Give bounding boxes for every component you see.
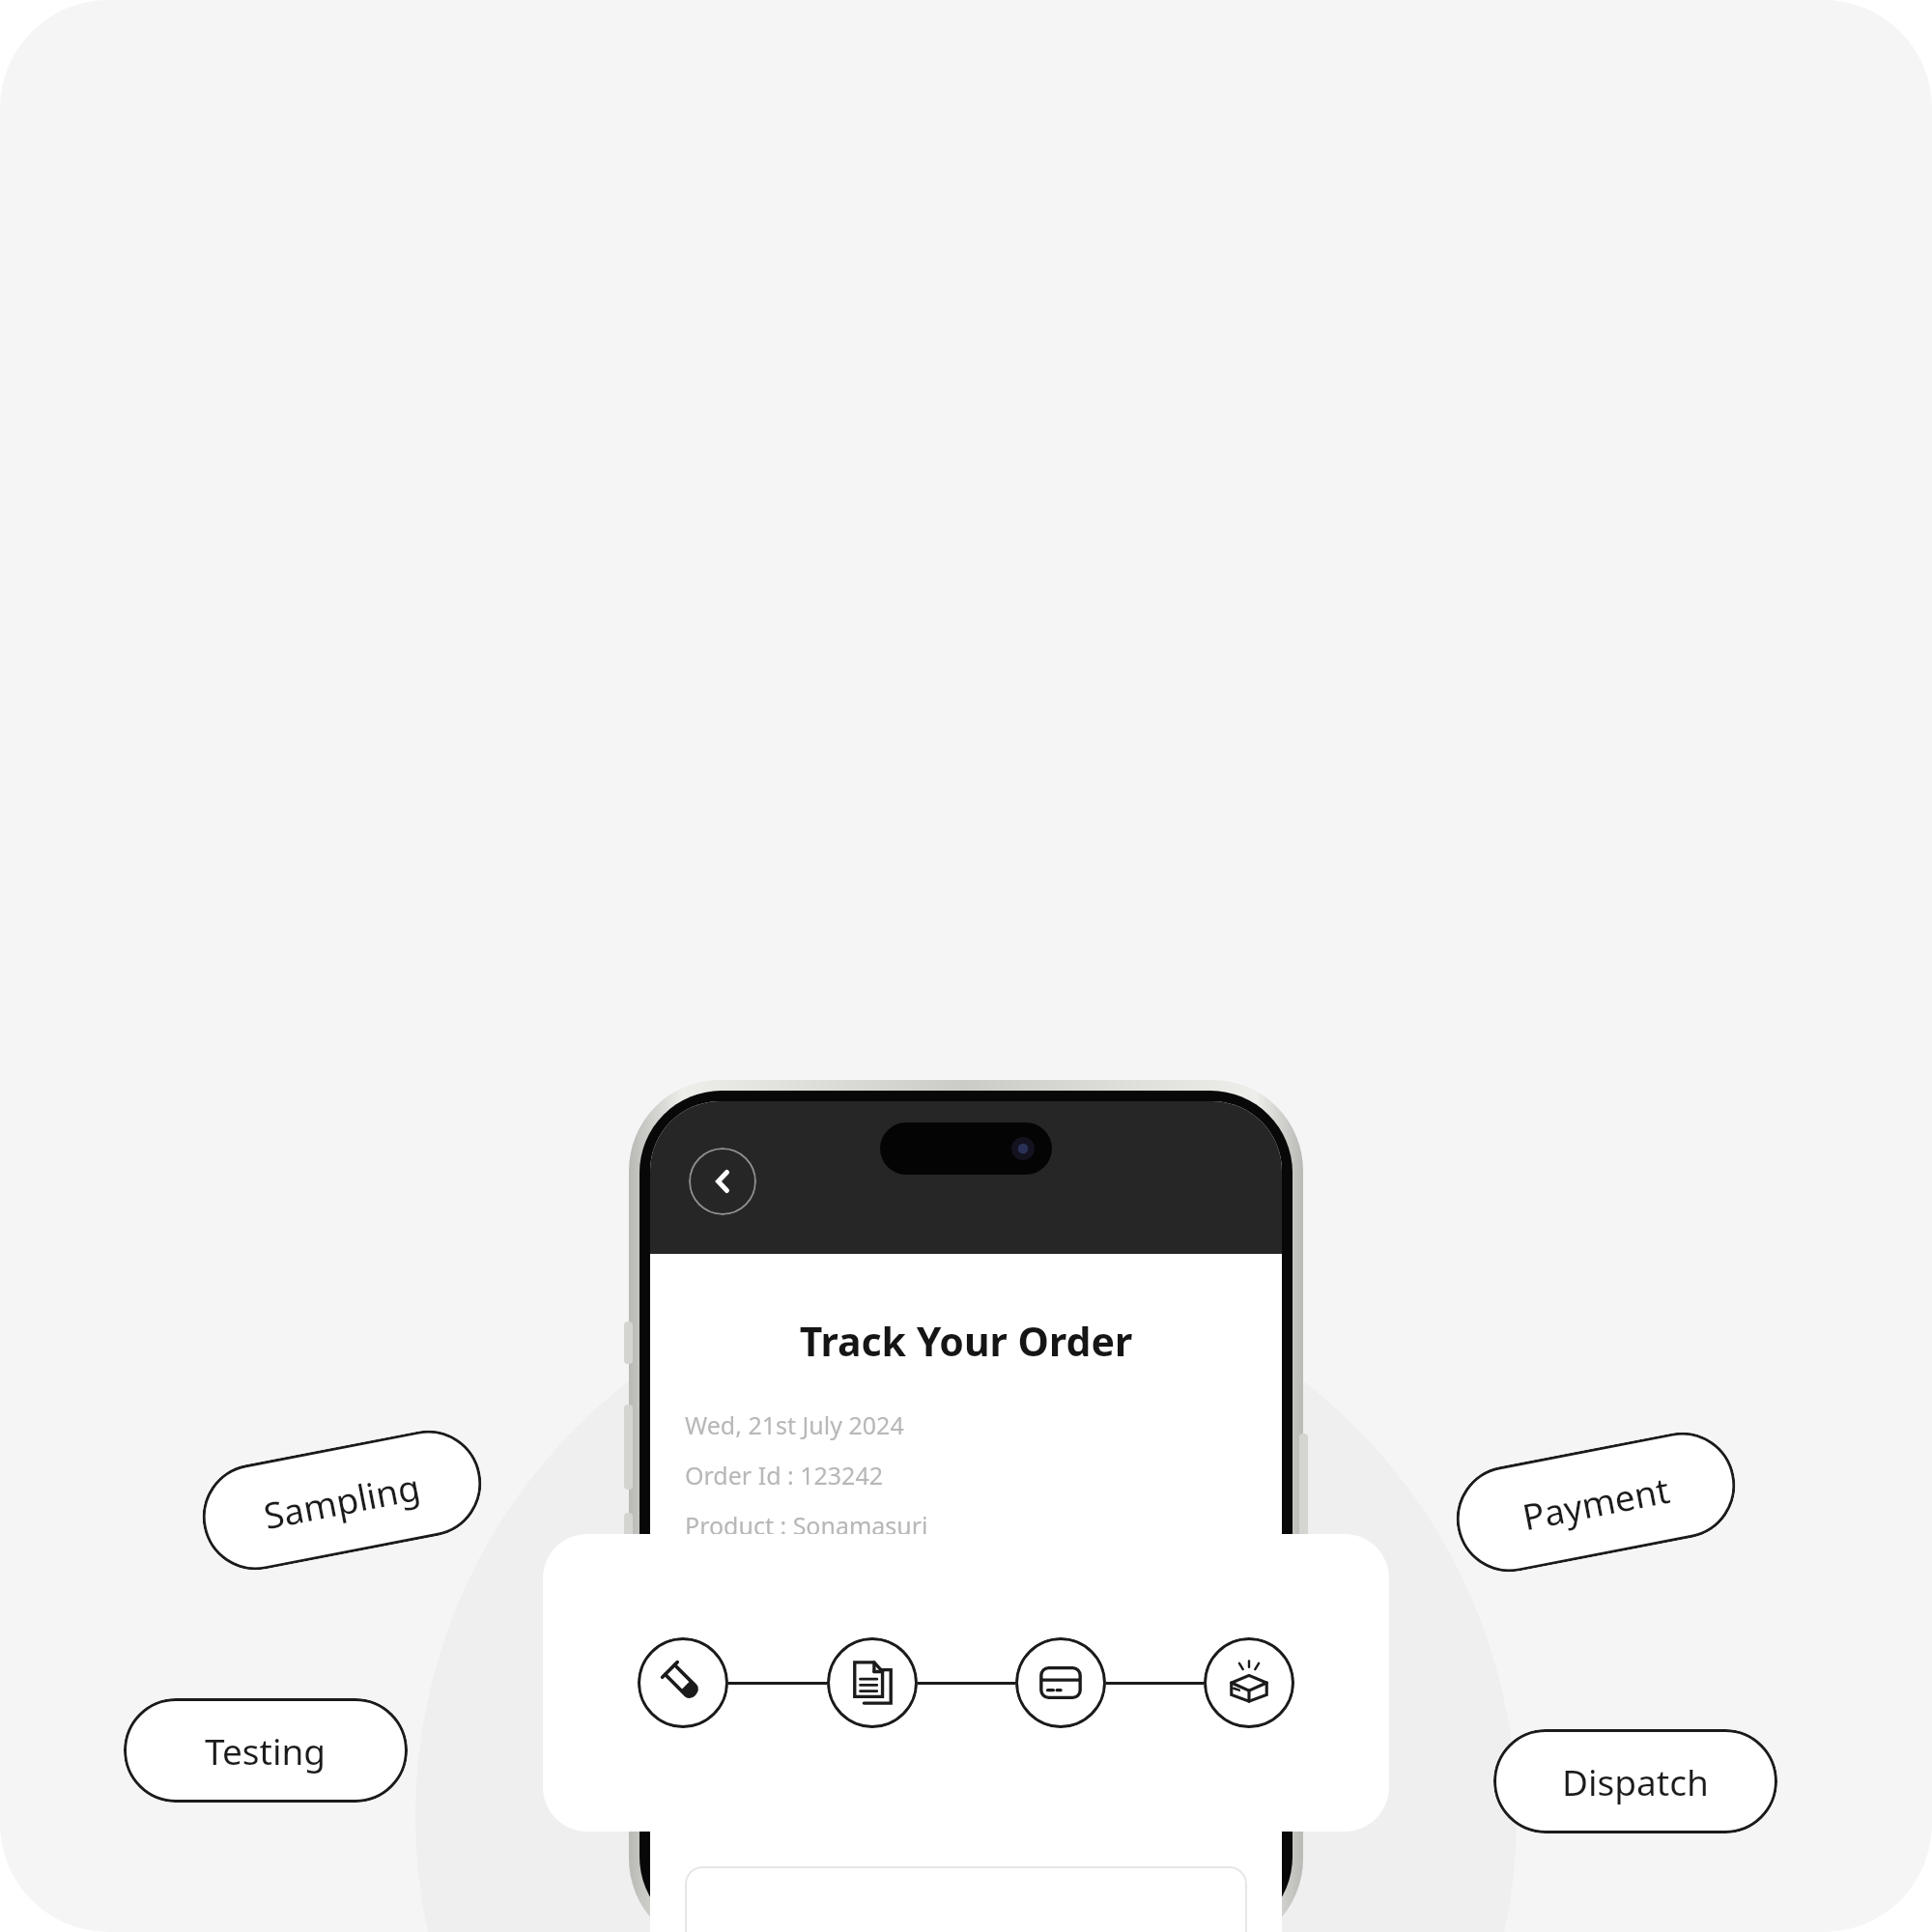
button[interactable]: Sampling — [638, 1637, 728, 1728]
button[interactable]: Dispatch — [1493, 1729, 1777, 1833]
staticText: Payment — [1518, 1464, 1673, 1540]
staticText: Track Your Order — [650, 1314, 1282, 1368]
button[interactable]: Back — [689, 1148, 756, 1215]
button[interactable]: Testing — [124, 1698, 408, 1803]
staticText: Wed, 21st July 2024 — [685, 1408, 904, 1441]
staticText: Product : Sonamasuri — [685, 1509, 928, 1542]
button[interactable]: Payment — [1447, 1423, 1744, 1581]
button[interactable]: Sampling — [193, 1421, 491, 1579]
staticText: Order Id : 123242 — [685, 1459, 884, 1492]
button[interactable]: Payment — [1015, 1637, 1106, 1728]
button[interactable]: Dispatch — [1204, 1637, 1294, 1728]
staticText: Dispatch — [1562, 1757, 1709, 1805]
staticText: Testing — [205, 1726, 327, 1775]
button[interactable]: Testing report — [827, 1637, 918, 1728]
staticText: Sampling — [260, 1461, 424, 1539]
